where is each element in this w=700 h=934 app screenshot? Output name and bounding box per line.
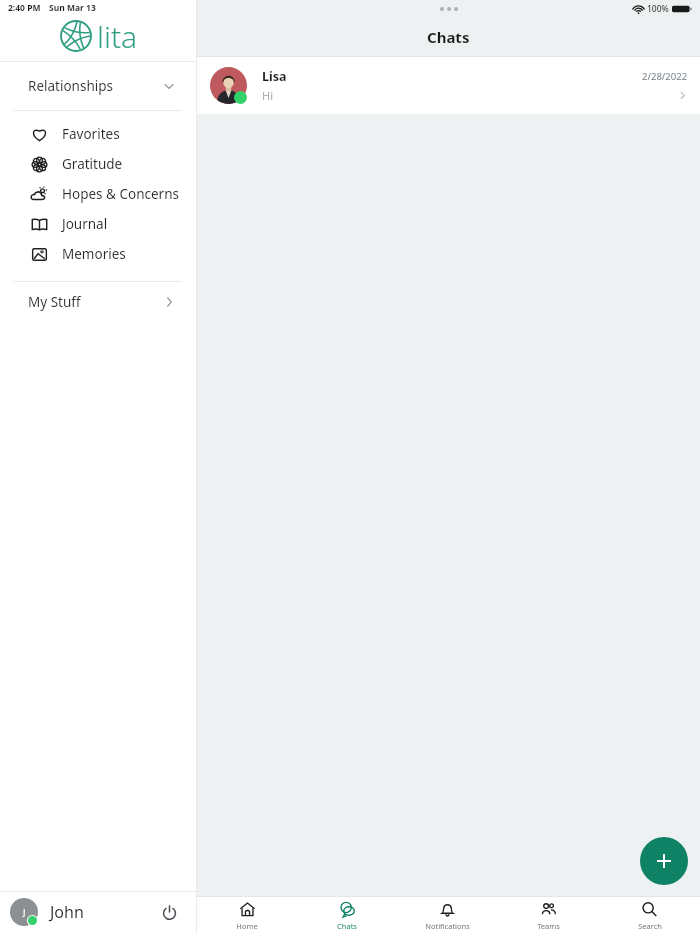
button[interactable]: Search (599, 897, 700, 934)
staticText: My Stuff (28, 293, 81, 311)
button[interactable]: New chat (640, 837, 688, 885)
staticText: 2/28/2022 (642, 70, 688, 83)
button[interactable]: Favorites (0, 119, 196, 149)
staticText: Chats (337, 921, 357, 931)
staticText: Sun Mar 13 (49, 2, 96, 14)
button[interactable]: Memories (0, 239, 196, 269)
staticText: 2:40 PM (8, 2, 41, 14)
staticText: J (23, 906, 26, 918)
staticText: John (50, 901, 84, 923)
button[interactable]: Sign out (156, 899, 182, 925)
staticText: Gratitude (62, 155, 123, 173)
staticText: 100% (647, 3, 669, 15)
staticText: Home (236, 921, 258, 931)
button[interactable]: Gratitude (0, 149, 196, 179)
button[interactable]: My Stuff (0, 282, 196, 322)
staticText: Notifications (425, 921, 470, 931)
button[interactable]: Hopes & Concerns (0, 179, 196, 209)
staticText: Hopes & Concerns (62, 185, 179, 203)
button[interactable]: Lisa (197, 57, 700, 114)
staticText: Journal (62, 215, 108, 233)
button[interactable]: J (0, 892, 196, 932)
button[interactable]: Teams (498, 897, 599, 934)
staticText: Relationships (28, 77, 113, 95)
staticText: Favorites (62, 125, 120, 143)
button[interactable]: Journal (0, 209, 196, 239)
staticText: Chats (427, 27, 470, 47)
button[interactable]: Home (197, 897, 297, 934)
staticText: Teams (537, 921, 560, 931)
staticText: Hi (262, 88, 273, 103)
staticText: Memories (62, 245, 126, 263)
staticText: lita (97, 16, 138, 56)
button[interactable]: Notifications (397, 897, 498, 934)
staticText: Search (638, 921, 662, 931)
button[interactable]: Relationships (0, 62, 196, 110)
button[interactable]: Chats (297, 897, 397, 934)
staticText: Lisa (262, 68, 287, 85)
